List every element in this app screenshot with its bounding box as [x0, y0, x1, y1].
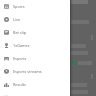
- button[interactable]: Live: [0, 13, 70, 26]
- staticText: 1xGames: [13, 43, 30, 48]
- button[interactable]: Results: [0, 78, 70, 91]
- button[interactable]: Esports: [0, 52, 70, 65]
- staticText: Bet slip: [13, 30, 27, 35]
- button[interactable]: Esports streams: [0, 65, 70, 78]
- button[interactable]: Bet slip: [0, 26, 70, 39]
- button[interactable]: 1xGames: [0, 39, 70, 52]
- staticText: Sports: [13, 4, 25, 9]
- button[interactable]: Sports: [0, 0, 70, 13]
- staticText: Live: [13, 17, 21, 22]
- staticText: Esports: [13, 56, 27, 61]
- staticText: Results: [13, 82, 26, 87]
- staticText: Esports streams: [13, 69, 42, 74]
